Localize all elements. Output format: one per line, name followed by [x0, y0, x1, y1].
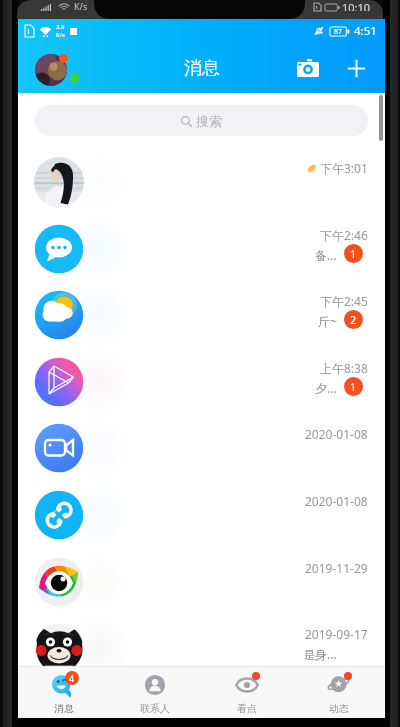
button[interactable]: Add: [334, 46, 378, 90]
button[interactable]: 下午2:45: [18, 282, 385, 349]
staticText: 上午8:38: [320, 360, 368, 376]
button[interactable]: Profile: [30, 50, 78, 88]
button[interactable]: 动态: [293, 666, 385, 718]
staticText: 2: [350, 312, 357, 327]
staticText: 夕…: [315, 380, 337, 396]
staticText: 1: [350, 246, 357, 261]
button[interactable]: 看点: [201, 666, 293, 718]
staticText: 下午2:46: [320, 227, 368, 243]
staticText: 4:51: [354, 23, 377, 39]
staticText: 下午3:01: [320, 160, 368, 176]
staticText: 不是身…: [291, 646, 337, 662]
staticText: 下午2:45: [320, 293, 368, 309]
staticText: K/s: [56, 31, 65, 39]
staticText: 联系人: [140, 702, 170, 715]
staticText: 2020-01-08: [305, 426, 368, 442]
staticText: 2.9: [56, 23, 65, 31]
staticText: 消息: [54, 702, 74, 715]
staticText: 2019-09-17: [305, 626, 368, 642]
button[interactable]: 下午2:46: [18, 216, 385, 283]
button[interactable]: 搜索: [35, 105, 368, 136]
button[interactable]: 下午3:01: [18, 149, 385, 216]
button[interactable]: 2019-11-29: [18, 549, 385, 616]
staticText: 2020-01-08: [305, 493, 368, 509]
button[interactable]: 4: [18, 666, 109, 718]
staticText: 4: [69, 672, 75, 684]
button[interactable]: 上午8:38: [18, 349, 385, 416]
staticText: 2019-11-29: [305, 560, 368, 576]
staticText: 动态: [329, 702, 349, 715]
button[interactable]: 联系人: [109, 666, 201, 718]
staticText: 斤~: [318, 313, 337, 329]
staticText: 看点: [237, 702, 257, 715]
staticText: 1: [350, 379, 357, 394]
staticText: 10:10: [342, 0, 371, 11]
staticText: 备…: [315, 247, 337, 263]
staticText: 消息: [184, 57, 220, 80]
button[interactable]: 2019-09-17: [18, 615, 385, 682]
staticText: 87: [334, 27, 343, 36]
staticText: 搜索: [196, 113, 222, 129]
button[interactable]: Camera: [286, 46, 330, 90]
staticText: K/s: [74, 0, 88, 11]
button[interactable]: 2020-01-08: [18, 415, 385, 482]
button[interactable]: 2020-01-08: [18, 482, 385, 549]
